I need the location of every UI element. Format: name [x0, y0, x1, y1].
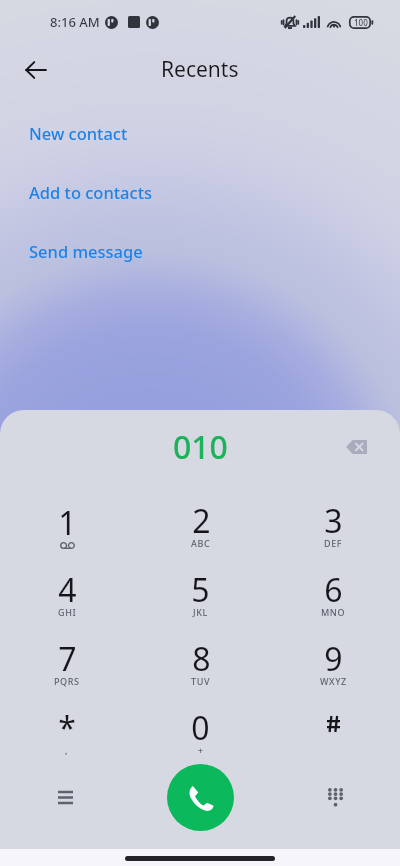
staticText: Send message [29, 240, 143, 262]
button[interactable]: 4 [0, 563, 134, 632]
staticText: 4 [58, 568, 77, 612]
staticText: New contact [29, 122, 128, 144]
staticText: 6 [324, 568, 343, 612]
button[interactable]: 7 [0, 632, 134, 701]
staticText: 0 [191, 706, 210, 750]
staticText: 2 [192, 499, 211, 543]
button[interactable]: Back [14, 48, 58, 92]
button[interactable]: 3 [267, 494, 400, 563]
button[interactable]: 0 [134, 701, 267, 770]
button[interactable]: More options [41, 773, 89, 821]
staticText: 010 [173, 425, 228, 469]
staticText: 5 [191, 568, 210, 612]
button[interactable]: 5 [134, 563, 267, 632]
staticText: 8 [192, 637, 211, 681]
button[interactable]: 8 [134, 632, 267, 701]
staticText: WXYZ [320, 675, 347, 687]
button[interactable]: * [0, 701, 134, 770]
staticText: PQRS [54, 675, 80, 687]
button[interactable]: Call [167, 764, 234, 831]
button[interactable]: 1 [0, 494, 134, 563]
button[interactable]: 9 [267, 632, 400, 701]
staticText: GHI [58, 606, 77, 618]
staticText: 1 [58, 501, 77, 545]
button[interactable]: Backspace [332, 423, 380, 471]
staticText: * [58, 706, 76, 750]
staticText: ABC [191, 537, 211, 549]
button[interactable]: Dialpad [311, 773, 359, 821]
staticText: + [198, 744, 204, 756]
staticText: 3 [324, 499, 343, 543]
staticText: MNO [321, 606, 346, 618]
staticText: 9 [324, 637, 343, 681]
staticText: Recents [161, 55, 239, 84]
staticText: TUV [191, 675, 211, 687]
staticText: 100 [354, 17, 368, 28]
staticText: DEF [324, 537, 343, 549]
staticText: 7 [58, 637, 77, 681]
staticText: 8:16 AM [50, 13, 100, 31]
button[interactable]: 2 [134, 494, 267, 563]
button[interactable]: Add to contacts [0, 162, 400, 221]
staticText: JKL [193, 606, 208, 618]
button[interactable]: Send message [0, 221, 400, 280]
button[interactable]: New contact [0, 103, 400, 162]
button[interactable] [267, 701, 400, 770]
button[interactable]: 6 [267, 563, 400, 632]
staticText: , [65, 744, 69, 756]
staticText: Add to contacts [29, 181, 152, 203]
